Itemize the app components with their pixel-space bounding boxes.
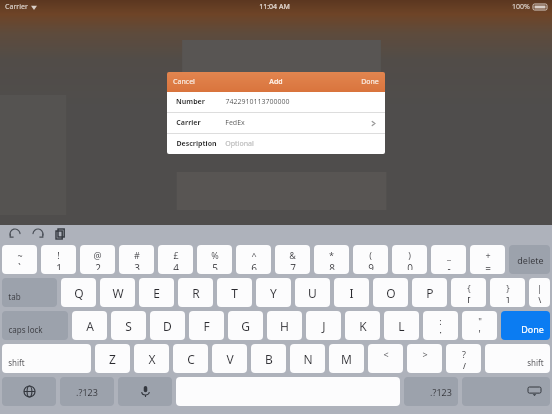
button[interactable]: Cancel	[173, 72, 195, 92]
button[interactable]: shift	[485, 344, 550, 373]
button[interactable]: (	[353, 245, 388, 274]
button[interactable]: A	[72, 311, 107, 340]
button[interactable]: Number	[176, 92, 377, 112]
staticText: H	[280, 318, 289, 334]
button[interactable]: |	[529, 278, 550, 307]
button[interactable]: W	[100, 278, 135, 307]
staticText: 9	[368, 261, 374, 270]
button[interactable]: C	[173, 344, 208, 373]
staticText: *	[329, 249, 334, 261]
button[interactable]: S	[111, 311, 146, 340]
staticText: 3	[134, 261, 140, 270]
staticText: 6	[251, 261, 257, 270]
button[interactable]: T	[217, 278, 252, 307]
staticText: B	[265, 351, 273, 367]
button[interactable]: <	[368, 344, 403, 373]
button[interactable]: Redo	[30, 226, 46, 242]
button[interactable]: H	[267, 311, 302, 340]
staticText: Optional	[225, 139, 254, 149]
button[interactable]: :	[423, 311, 458, 340]
staticText: L	[398, 318, 405, 334]
button[interactable]: P	[412, 278, 447, 307]
staticText: 7422910113700000	[225, 97, 290, 107]
button[interactable]: B	[251, 344, 286, 373]
button[interactable]: #	[119, 245, 154, 274]
button[interactable]: .?123	[404, 377, 458, 406]
button[interactable]: {	[451, 278, 486, 307]
staticText: (	[369, 249, 372, 261]
button[interactable]: L	[384, 311, 419, 340]
button[interactable]: delete	[509, 245, 550, 274]
staticText: Number	[176, 97, 205, 107]
button[interactable]: ^	[236, 245, 271, 274]
button[interactable]: &	[275, 245, 310, 274]
button[interactable]: "	[462, 311, 497, 340]
staticText: }	[506, 282, 510, 294]
button[interactable]: )	[392, 245, 427, 274]
button[interactable]: Q	[61, 278, 96, 307]
button[interactable]: £	[158, 245, 193, 274]
button[interactable]: >	[407, 344, 442, 373]
button[interactable]: %	[197, 245, 232, 274]
button[interactable]: }	[490, 278, 525, 307]
button[interactable]: shift	[2, 344, 91, 373]
button[interactable]: _	[431, 245, 466, 274]
button[interactable]: Done	[501, 311, 550, 340]
button[interactable]: Carrier	[176, 113, 377, 133]
button[interactable]: Z	[95, 344, 130, 373]
button[interactable]: Y	[256, 278, 291, 307]
button[interactable]: I	[334, 278, 369, 307]
button[interactable]: O	[373, 278, 408, 307]
staticText: 4	[173, 261, 179, 270]
button[interactable]: !	[41, 245, 76, 274]
button[interactable]: @	[80, 245, 115, 274]
button[interactable]: Hide keyboard	[462, 377, 550, 406]
staticText: :	[439, 315, 442, 327]
staticText: %	[211, 249, 219, 261]
button[interactable]: Paste	[53, 226, 69, 242]
staticText: R	[192, 285, 200, 301]
button[interactable]: *	[314, 245, 349, 274]
button[interactable]: Dictation	[118, 377, 172, 406]
staticText: #	[134, 249, 140, 261]
button[interactable]: J	[306, 311, 341, 340]
staticText: F	[203, 318, 210, 334]
button[interactable]: G	[228, 311, 263, 340]
button[interactable]: E	[139, 278, 174, 307]
staticText: Carrier	[176, 118, 201, 128]
button[interactable]: N	[290, 344, 325, 373]
staticText: 100%	[512, 2, 530, 12]
button[interactable]: U	[295, 278, 330, 307]
button[interactable]: Undo	[7, 226, 23, 242]
staticText: V	[226, 351, 234, 367]
staticText: FedEx	[225, 118, 245, 128]
button[interactable]: R	[178, 278, 213, 307]
staticText: ]	[506, 294, 510, 303]
button[interactable]: tab	[2, 278, 57, 307]
button[interactable]: K	[345, 311, 380, 340]
staticText: Z	[109, 351, 116, 367]
button[interactable]: Change keyboard	[2, 377, 56, 406]
button[interactable]: Description	[176, 134, 377, 154]
staticText: Description	[176, 139, 217, 149]
button[interactable]: ?	[446, 344, 481, 373]
staticText: Q	[74, 285, 84, 301]
button[interactable]: X	[134, 344, 169, 373]
staticText: 0	[407, 261, 413, 270]
button[interactable]: M	[329, 344, 364, 373]
button[interactable]: .?123	[60, 377, 114, 406]
button[interactable]: Done	[361, 72, 379, 92]
staticText: >	[422, 348, 428, 360]
staticText: U	[308, 285, 317, 301]
staticText: _	[447, 249, 451, 261]
staticText: Done	[521, 323, 544, 335]
button[interactable]: F	[189, 311, 224, 340]
button[interactable]: D	[150, 311, 185, 340]
staticText: '	[478, 327, 481, 336]
button[interactable]: caps lock	[2, 311, 68, 340]
button[interactable]: ~	[2, 245, 37, 274]
button[interactable]: +	[470, 245, 505, 274]
button[interactable]: V	[212, 344, 247, 373]
